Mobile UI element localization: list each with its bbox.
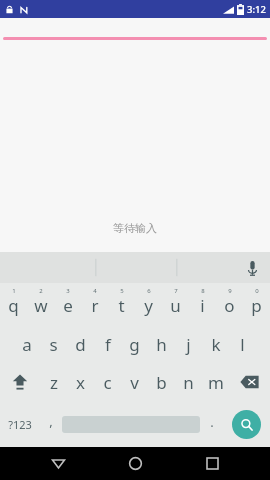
button[interactable]: m — [202, 363, 229, 401]
button[interactable]: 4 — [81, 283, 108, 325]
staticText: f — [105, 333, 111, 356]
button[interactable]: . — [200, 401, 223, 447]
staticText: . — [210, 413, 214, 431]
staticText: l — [240, 333, 245, 356]
button[interactable]: Shift — [0, 363, 40, 401]
button[interactable]: d — [67, 325, 94, 363]
staticText: 6 — [147, 287, 151, 295]
staticText: o — [224, 294, 235, 317]
staticText: b — [156, 371, 167, 394]
staticText: , — [49, 412, 53, 430]
button[interactable]: g — [121, 325, 148, 363]
button[interactable]: b — [148, 363, 175, 401]
staticText: 2 — [39, 287, 43, 295]
staticText: 等待输入 — [113, 221, 157, 235]
button[interactable]: h — [148, 325, 175, 363]
button[interactable]: Search — [223, 401, 270, 447]
button[interactable]: 9 — [216, 283, 243, 325]
staticText: 5 — [120, 287, 124, 295]
staticText: 1 — [12, 287, 16, 295]
staticText: e — [63, 294, 73, 317]
button[interactable]: n — [175, 363, 202, 401]
button[interactable]: z — [40, 363, 67, 401]
staticText: w — [34, 294, 48, 317]
button[interactable]: 0 — [243, 283, 270, 325]
staticText: h — [156, 333, 167, 356]
staticText: u — [170, 294, 181, 317]
button[interactable]: s — [40, 325, 67, 363]
staticText: k — [211, 333, 221, 356]
staticText: q — [8, 294, 19, 317]
staticText: 9 — [228, 287, 232, 295]
button[interactable]: 2 — [27, 283, 54, 325]
button[interactable]: Voice input — [240, 256, 264, 280]
button[interactable]: v — [121, 363, 148, 401]
button[interactable]: Home — [116, 447, 154, 480]
staticText: n — [183, 371, 194, 394]
staticText: y — [144, 294, 153, 317]
button[interactable]: f — [94, 325, 121, 363]
staticText: m — [208, 371, 224, 394]
button[interactable]: c — [94, 363, 121, 401]
staticText: a — [22, 333, 32, 356]
staticText: d — [75, 333, 86, 356]
staticText: j — [186, 333, 191, 356]
staticText: 4 — [93, 287, 97, 295]
button[interactable]: ?123 — [0, 401, 39, 447]
staticText: z — [50, 371, 58, 394]
staticText: c — [103, 371, 112, 394]
button[interactable]: Recent apps — [193, 447, 231, 480]
staticText: 7 — [174, 287, 178, 295]
staticText: i — [200, 294, 205, 317]
button[interactable]: j — [175, 325, 202, 363]
button[interactable]: 1 — [0, 283, 27, 325]
button[interactable]: x — [67, 363, 94, 401]
button[interactable]: k — [202, 325, 229, 363]
button[interactable]: 5 — [108, 283, 135, 325]
button[interactable]: a — [13, 325, 40, 363]
button[interactable]: , — [39, 401, 62, 447]
button[interactable]: Backspace — [229, 363, 270, 401]
button[interactable]: l — [229, 325, 256, 363]
staticText: p — [251, 294, 262, 317]
staticText: t — [118, 294, 125, 317]
staticText: x — [76, 371, 85, 394]
button[interactable]: Back — [39, 447, 77, 480]
staticText: 3 — [66, 287, 70, 295]
staticText: ?123 — [8, 417, 32, 432]
button[interactable]: 3 — [54, 283, 81, 325]
button[interactable]: 6 — [135, 283, 162, 325]
button[interactable]: Space — [62, 401, 200, 447]
staticText: 0 — [255, 287, 259, 295]
button[interactable]: 8 — [189, 283, 216, 325]
staticText: r — [91, 294, 99, 317]
staticText: 8 — [201, 287, 205, 295]
staticText: s — [49, 333, 58, 356]
staticText: v — [130, 371, 139, 394]
staticText: 3:12 — [247, 3, 266, 16]
button[interactable]: 7 — [162, 283, 189, 325]
staticText: g — [129, 333, 140, 356]
